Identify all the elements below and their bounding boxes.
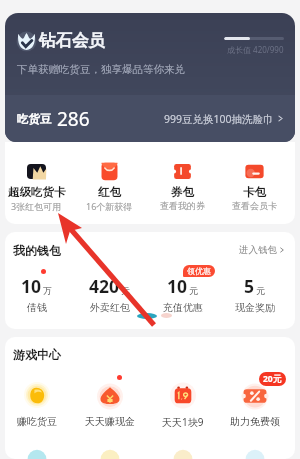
staticText: 借钱 — [27, 301, 47, 314]
button[interactable]: 助力免费领 — [219, 362, 290, 428]
button[interactable]: 天天赚现金 — [73, 362, 146, 428]
staticText: 元 — [121, 285, 130, 296]
staticText: 万 — [43, 285, 52, 296]
staticText: 我的钱包 — [13, 243, 61, 258]
staticText: 红包 — [98, 185, 121, 199]
staticText: 助力免费领 — [230, 415, 280, 428]
staticText: 游戏中心 — [13, 347, 61, 362]
staticText: 5 — [244, 274, 255, 298]
staticText: 现金奖励 — [235, 301, 275, 314]
staticText: 420 — [89, 274, 120, 298]
staticText: 天天赚现金 — [85, 415, 135, 428]
staticText: 下单获赠吃货豆，独享爆品等你来兑 — [17, 63, 185, 76]
button[interactable]: 红包 — [73, 142, 146, 212]
button[interactable]: 券包 — [146, 142, 219, 211]
staticText: 10 — [167, 274, 188, 298]
button[interactable]: 超级吃货卡 — [5, 142, 73, 212]
staticText: 查看我的券 — [160, 200, 205, 211]
staticText: 10 — [21, 274, 42, 298]
staticText: 领优惠 — [187, 266, 211, 276]
staticText: 20元 — [263, 373, 282, 385]
button[interactable]: 卡包 — [219, 142, 290, 211]
button[interactable]: 420 — [73, 258, 146, 314]
staticText: 天天1块9 — [162, 415, 204, 429]
staticText: 赚吃货豆 — [17, 415, 57, 428]
button[interactable]: 10 — [146, 258, 219, 314]
staticText: 超级吃货卡 — [8, 185, 66, 199]
staticText: 999豆兑换100抽洗脸巾 — [164, 112, 274, 126]
staticText: 进入钱包 — [239, 244, 277, 256]
staticText: 查看会员卡 — [232, 200, 277, 211]
staticText: 元 — [256, 285, 265, 296]
button[interactable]: 赚吃货豆 — [5, 362, 73, 428]
staticText: 卡包 — [243, 185, 266, 199]
staticText: 券包 — [171, 185, 194, 199]
button[interactable]: 10 — [5, 258, 73, 314]
staticText: 286 — [57, 106, 90, 132]
staticText: 吃货豆 — [17, 112, 52, 126]
staticText: 外卖红包 — [90, 301, 130, 314]
staticText: 充值优惠 — [163, 301, 203, 314]
staticText: 16个新获得 — [86, 200, 133, 212]
button[interactable]: 吃货豆 — [5, 95, 295, 142]
staticText: 钻石会员 — [39, 30, 105, 51]
button[interactable]: 进入钱包 — [237, 242, 287, 258]
button[interactable]: 天天1块9 — [146, 362, 219, 429]
button[interactable]: 5 — [219, 258, 290, 314]
staticText: 成长值 420/990 — [227, 44, 284, 55]
staticText: 元 — [189, 285, 198, 296]
staticText: 3张红包可用 — [11, 200, 62, 212]
